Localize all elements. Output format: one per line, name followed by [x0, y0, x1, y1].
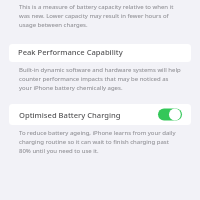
staticText: Optimised Battery Charging — [19, 110, 158, 120]
staticText: Built-in dynamic software and hardware s… — [19, 66, 181, 91]
staticText: To reduce battery ageing, iPhone learns … — [19, 129, 181, 154]
staticText: This is a measure of battery capacity re… — [19, 3, 181, 28]
button[interactable]: Optimised Battery Charging toggle — [158, 108, 182, 121]
button[interactable]: Optimised Battery Charging — [9, 104, 191, 125]
button[interactable]: Peak Performance Capability — [9, 44, 191, 62]
staticText: Peak Performance Capability — [18, 47, 123, 57]
